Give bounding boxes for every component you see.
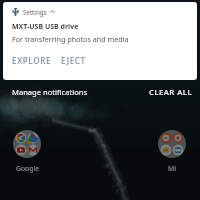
button[interactable]: CLEAR ALL xyxy=(149,87,193,98)
staticText: Manage notifications xyxy=(12,87,88,97)
staticText: EXPLORE xyxy=(12,55,52,66)
staticText: CLEAR ALL xyxy=(149,87,193,98)
staticText: Settings xyxy=(23,8,47,16)
button[interactable]: Google folder xyxy=(13,130,41,158)
button[interactable]: EJECT xyxy=(61,55,86,66)
button[interactable]: EXPLORE xyxy=(12,55,52,66)
staticText: EJECT xyxy=(61,55,86,66)
button[interactable]: Manage notifications xyxy=(12,87,88,97)
staticText: Mi xyxy=(168,164,176,173)
button[interactable]: Settings xyxy=(3,2,197,80)
staticText: Google xyxy=(16,164,39,173)
button[interactable]: Mi folder xyxy=(158,130,186,158)
staticText: MXT-USB USB drive xyxy=(12,22,79,32)
staticText: For transferring photos and media xyxy=(12,34,129,44)
